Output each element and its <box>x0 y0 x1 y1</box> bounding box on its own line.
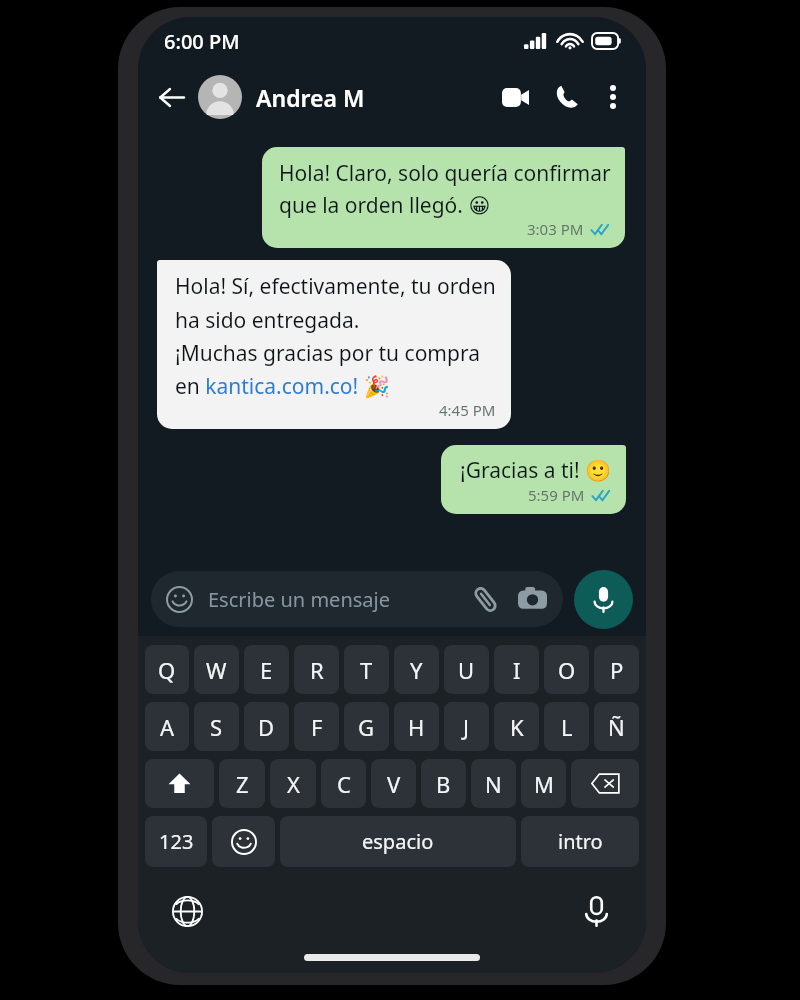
staticText: K <box>510 712 524 742</box>
staticText: I <box>513 655 521 685</box>
staticText: U <box>458 655 475 685</box>
button[interactable]: Video call <box>494 76 536 118</box>
button[interactable]: More options <box>596 80 630 114</box>
staticText: 3:03 PM <box>527 219 584 239</box>
button[interactable]: Voice input <box>573 888 619 934</box>
staticText: Y <box>410 655 423 685</box>
button[interactable]: Z <box>219 759 265 808</box>
staticText: G <box>358 712 375 742</box>
button[interactable]: Hola! Sí, efectivamente, tu orden ha sid… <box>157 260 511 429</box>
button[interactable]: R <box>294 645 339 694</box>
staticText: Hola! Claro, solo quería confirmar que l… <box>279 159 611 219</box>
button[interactable]: Change language <box>165 889 209 933</box>
button[interactable]: T <box>344 645 389 694</box>
staticText: espacio <box>362 828 434 855</box>
staticText: R <box>310 655 324 685</box>
button[interactable]: intro <box>521 816 639 867</box>
button[interactable]: M <box>521 759 566 808</box>
staticText: Escribe un mensaje <box>208 586 390 613</box>
staticText: M <box>534 769 554 799</box>
staticText: 4:45 PM <box>439 400 496 420</box>
button[interactable]: S <box>194 702 239 751</box>
button[interactable]: ¡Gracias a ti! 🙂 <box>441 445 626 514</box>
staticText: ¡Gracias a ti! 🙂 <box>460 456 612 485</box>
button[interactable]: G <box>344 702 389 751</box>
staticText: V <box>387 769 401 799</box>
button[interactable]: Y <box>394 645 439 694</box>
staticText: Andrea M <box>256 82 365 113</box>
staticText: B <box>436 769 451 799</box>
button[interactable]: espacio <box>280 816 516 867</box>
button[interactable]: U <box>444 645 489 694</box>
button[interactable]: Voice message <box>574 570 633 629</box>
button[interactable]: H <box>394 702 439 751</box>
button[interactable]: Escribe un mensaje <box>151 571 563 627</box>
staticText: X <box>287 769 300 799</box>
button[interactable]: Emoji <box>212 816 275 867</box>
staticText: Ñ <box>608 712 625 742</box>
staticText: Z <box>236 769 249 799</box>
button[interactable]: Andrea M <box>198 75 494 119</box>
staticText: N <box>485 769 502 799</box>
staticText: intro <box>558 828 603 855</box>
staticText: P <box>610 655 624 685</box>
staticText: Q <box>158 655 176 685</box>
button[interactable]: Ñ <box>594 702 639 751</box>
button[interactable]: X <box>270 759 316 808</box>
staticText: C <box>337 769 351 799</box>
button[interactable]: K <box>494 702 539 751</box>
button[interactable]: Shift <box>145 759 214 808</box>
button[interactable]: Attach <box>470 584 500 614</box>
button[interactable]: B <box>421 759 466 808</box>
button[interactable]: O <box>544 645 589 694</box>
staticText: O <box>558 655 576 685</box>
button[interactable]: A <box>145 702 189 751</box>
staticText: S <box>210 712 223 742</box>
staticText: 6:00 PM <box>164 28 240 55</box>
button[interactable]: Call <box>546 76 588 118</box>
button[interactable]: Camera <box>517 584 547 614</box>
button[interactable]: Backspace <box>571 759 639 808</box>
button[interactable]: Back <box>152 78 190 116</box>
button[interactable]: V <box>371 759 416 808</box>
button[interactable]: J <box>444 702 489 751</box>
staticText: H <box>408 712 425 742</box>
button[interactable]: P <box>594 645 639 694</box>
button[interactable]: I <box>494 645 539 694</box>
button[interactable]: C <box>321 759 366 808</box>
button[interactable]: Q <box>145 645 189 694</box>
staticText: F <box>311 712 323 742</box>
button[interactable]: L <box>544 702 589 751</box>
button[interactable]: D <box>244 702 289 751</box>
staticText: W <box>206 655 227 685</box>
staticText: L <box>561 712 573 742</box>
staticText: D <box>258 712 275 742</box>
button[interactable]: Hola! Claro, solo quería confirmar que l… <box>262 147 625 248</box>
staticText: 5:59 PM <box>528 485 585 505</box>
staticText: E <box>260 655 273 685</box>
button[interactable]: N <box>471 759 516 808</box>
button[interactable]: W <box>194 645 239 694</box>
staticText: J <box>463 712 470 742</box>
staticText: A <box>160 712 175 742</box>
staticText: Hola! Sí, efectivamente, tu orden ha sid… <box>175 272 496 400</box>
button[interactable]: F <box>294 702 339 751</box>
button[interactable]: E <box>244 645 289 694</box>
staticText: T <box>360 655 373 685</box>
button[interactable]: 123 <box>145 816 207 867</box>
staticText: 123 <box>159 828 194 855</box>
